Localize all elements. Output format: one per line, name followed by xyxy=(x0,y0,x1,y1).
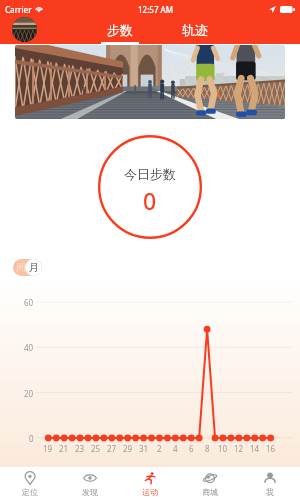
button[interactable]: 周 xyxy=(13,259,42,276)
button[interactable]: Profile xyxy=(12,17,37,42)
button[interactable]: 轨迹 xyxy=(169,22,221,44)
button[interactable]: 发现 xyxy=(60,467,120,500)
staticText: 周 xyxy=(16,261,26,274)
staticText: 轨迹 xyxy=(182,22,208,38)
staticText: 月 xyxy=(29,261,39,274)
staticText: 8 xyxy=(205,443,210,454)
staticText: 商城 xyxy=(202,487,218,497)
staticText: 2 xyxy=(157,443,162,454)
button[interactable]: 我 xyxy=(240,467,300,500)
staticText: 发现 xyxy=(82,487,98,497)
staticText: 12 xyxy=(234,443,244,454)
staticText: 16 xyxy=(266,443,276,454)
staticText: 步数 xyxy=(107,22,133,38)
staticText: 0 xyxy=(143,185,157,216)
button[interactable]: 运动 xyxy=(120,467,180,500)
button[interactable]: 今日步数 xyxy=(98,135,202,239)
staticText: 25 xyxy=(91,443,101,454)
staticText: Carrier xyxy=(5,4,32,15)
staticText: 27 xyxy=(107,443,117,454)
staticText: 31 xyxy=(139,443,149,454)
staticText: 60 xyxy=(24,297,34,308)
staticText: 10 xyxy=(218,443,228,454)
button[interactable]: 商城 xyxy=(180,467,240,500)
staticText: 20 xyxy=(24,388,34,399)
staticText: 6 xyxy=(189,443,194,454)
button[interactable]: 步数 xyxy=(94,22,146,44)
staticText: 23 xyxy=(75,443,85,454)
staticText: 4 xyxy=(173,443,178,454)
staticText: 21 xyxy=(59,443,69,454)
staticText: 19 xyxy=(43,443,53,454)
staticText: 运动 xyxy=(142,487,158,497)
staticText: 定位 xyxy=(22,487,38,497)
staticText: 14 xyxy=(250,443,260,454)
button[interactable]: 定位 xyxy=(0,467,60,500)
staticText: 今日步数 xyxy=(124,166,176,182)
staticText: 0 xyxy=(29,433,34,444)
staticText: 12:57 AM xyxy=(138,4,174,15)
staticText: 我 xyxy=(266,487,274,497)
staticText: 29 xyxy=(123,443,133,454)
staticText: 40 xyxy=(24,342,34,353)
